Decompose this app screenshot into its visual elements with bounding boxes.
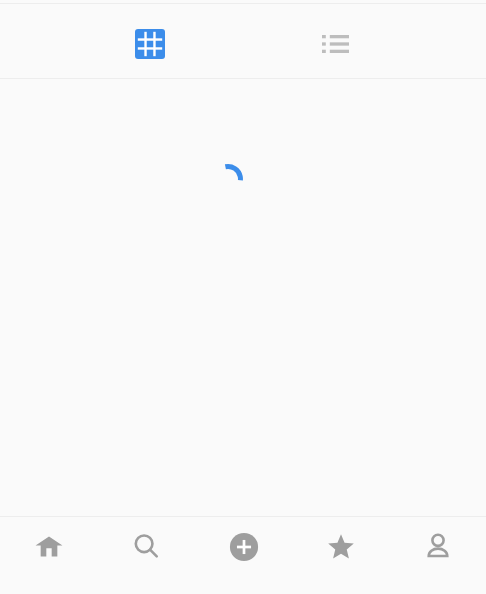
button[interactable]: Add	[195, 517, 292, 594]
button[interactable]: List view	[311, 20, 359, 68]
button[interactable]: Grid view	[126, 20, 174, 68]
button[interactable]: Profile	[389, 517, 486, 594]
button[interactable]: Favorites	[292, 517, 389, 594]
button[interactable]: Home	[0, 517, 98, 594]
button[interactable]: Search	[98, 517, 195, 594]
